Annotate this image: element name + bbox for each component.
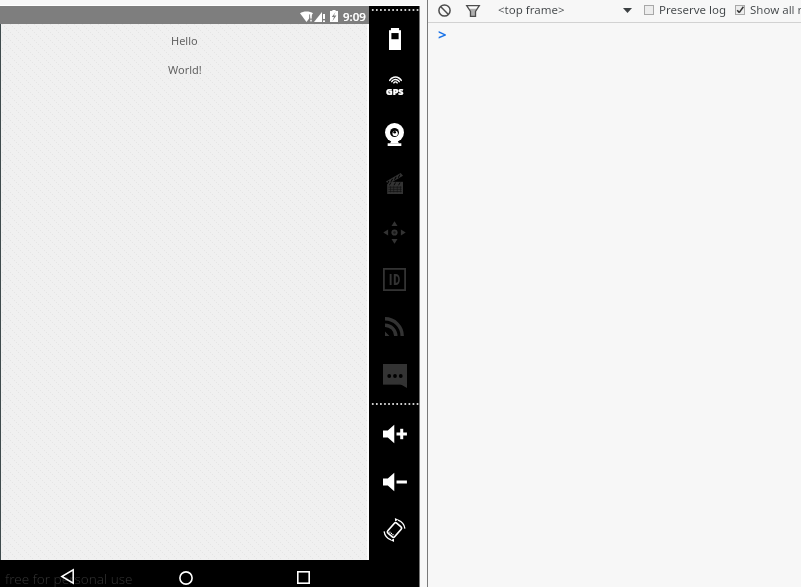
button[interactable]: Clear console <box>436 2 453 19</box>
button[interactable]: Recent apps <box>294 568 313 587</box>
staticText: Hello <box>171 33 198 48</box>
button[interactable]: Rotate <box>370 512 419 548</box>
staticText: World! <box>168 62 202 77</box>
staticText: <top frame> <box>498 2 565 18</box>
button[interactable]: <top frame> <box>490 0 635 21</box>
button[interactable]: GPS <box>370 68 419 104</box>
button[interactable]: Camera <box>370 116 419 152</box>
button[interactable]: Preserve log <box>642 0 727 21</box>
staticText: > <box>438 24 447 44</box>
staticText: Preserve log <box>659 2 727 18</box>
staticText: 9:09 <box>343 9 366 25</box>
button[interactable]: Volume up <box>370 416 419 452</box>
staticText: Show all m <box>750 2 801 18</box>
staticText: GPS <box>386 85 404 97</box>
button[interactable]: Record screen <box>370 165 419 201</box>
button[interactable]: Fingerprint <box>370 261 419 297</box>
button[interactable]: D-pad <box>370 214 419 250</box>
button[interactable]: Back <box>58 567 77 586</box>
button[interactable]: Cellular <box>370 308 419 344</box>
button[interactable]: Home <box>176 568 195 587</box>
button[interactable]: Show all m <box>733 0 801 21</box>
button[interactable]: Power <box>370 21 419 57</box>
button[interactable]: Volume down <box>370 464 419 500</box>
staticText: free for personal use <box>5 570 133 587</box>
button[interactable]: Phone / SMS <box>370 358 419 394</box>
button[interactable]: Filter <box>464 2 481 19</box>
